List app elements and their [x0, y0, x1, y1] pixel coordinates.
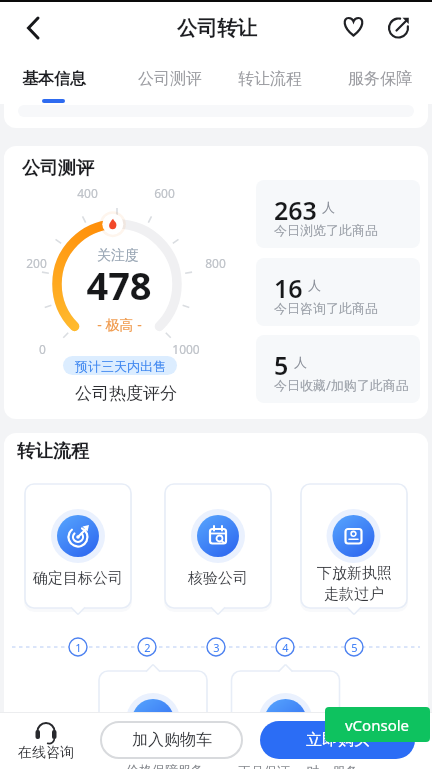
staticText: 1000 — [172, 341, 200, 357]
staticText: 走款过户 — [324, 585, 384, 604]
staticText: 800 — [205, 255, 226, 271]
button[interactable]: 基本信息 — [8, 58, 100, 100]
staticText: 公司转让 — [177, 16, 257, 41]
staticText: vConsole — [345, 715, 410, 735]
staticText: 人 — [308, 277, 321, 293]
staticText: 关注度 — [97, 247, 139, 265]
staticText: 16 — [274, 271, 303, 299]
staticText: 478 — [86, 259, 152, 311]
staticText: 1 — [75, 640, 82, 655]
staticText: 今日咨询了此商品 — [274, 300, 378, 316]
staticText: 确定目标公司 — [33, 569, 123, 588]
button[interactable]: 转让流程 — [224, 58, 316, 100]
staticText: 正品保证 一对一服务 — [238, 762, 359, 769]
staticText: 核验公司 — [188, 569, 248, 588]
button[interactable]: 在线咨询 — [18, 715, 74, 767]
button[interactable]: 服务保障 — [334, 58, 426, 100]
button[interactable] — [382, 10, 418, 46]
staticText: 263 — [274, 193, 317, 221]
button[interactable] — [336, 10, 372, 46]
button[interactable]: 公司测评 — [124, 58, 216, 100]
staticText: 立即购买 — [306, 730, 370, 750]
staticText: 在线咨询 — [18, 744, 74, 762]
staticText: 200 — [26, 255, 47, 271]
staticText: 400 — [77, 185, 98, 201]
staticText: 公司测评 — [138, 69, 202, 89]
staticText: 预计三天内出售 — [75, 358, 166, 374]
staticText: 基本信息 — [22, 69, 86, 89]
staticText: 公司测评 — [22, 157, 94, 180]
staticText: 加入购物车 — [132, 730, 212, 750]
staticText: - 极高 - — [97, 315, 142, 334]
staticText: 4 — [282, 640, 289, 655]
staticText: 人 — [294, 354, 307, 370]
staticText: 公司热度评分 — [75, 383, 177, 404]
button[interactable]: 加入购物车 — [100, 721, 243, 759]
staticText: 5 — [274, 348, 289, 376]
button[interactable]: 立即购买 — [260, 721, 415, 759]
staticText: 转让流程 — [17, 440, 89, 463]
button[interactable]: vConsole — [325, 707, 430, 742]
staticText: 今日浏览了此商品 — [274, 222, 378, 238]
staticText: 服务保障 — [348, 69, 412, 89]
button[interactable] — [18, 10, 54, 46]
staticText: 0 — [39, 341, 46, 357]
staticText: 价格保障服务 — [126, 762, 204, 769]
staticText: 5 — [351, 640, 358, 655]
staticText: 今日收藏/加购了此商品 — [274, 376, 409, 394]
staticText: 2 — [144, 640, 151, 655]
staticText: 转让流程 — [238, 69, 302, 89]
staticText: 下放新执照 — [317, 564, 392, 583]
staticText: 600 — [154, 185, 175, 201]
staticText: 3 — [213, 640, 220, 655]
staticText: 人 — [322, 199, 335, 215]
